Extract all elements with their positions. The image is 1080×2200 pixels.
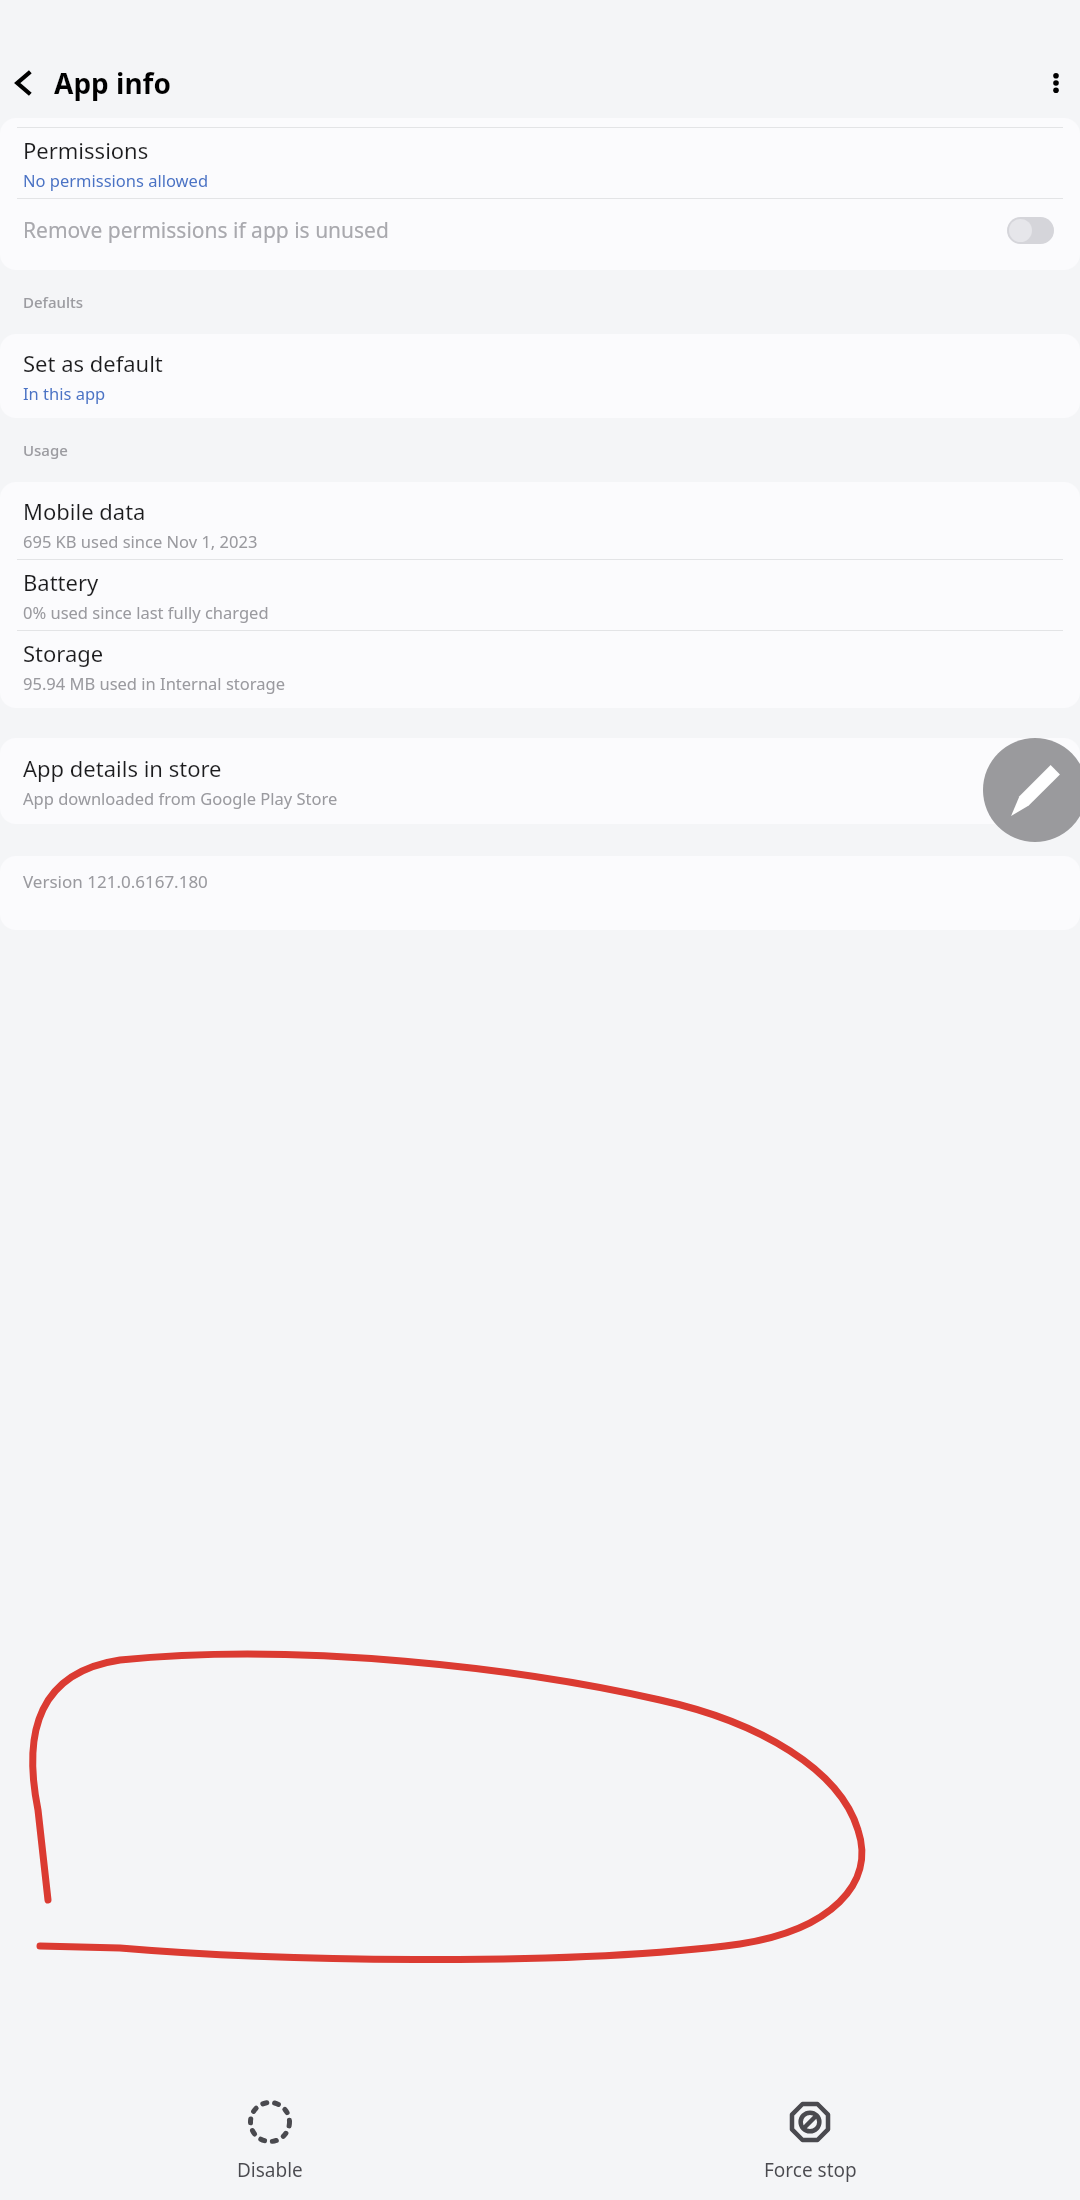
button[interactable]: Storage bbox=[0, 631, 1080, 701]
staticText: Remove permissions if app is unused bbox=[23, 216, 389, 245]
staticText: No permissions allowed bbox=[23, 169, 209, 191]
button[interactable]: More options bbox=[1032, 59, 1080, 107]
staticText: Force stop bbox=[764, 2157, 857, 2183]
staticText: Usage bbox=[23, 440, 68, 460]
button[interactable]: Disable bbox=[0, 2082, 540, 2200]
staticText: App details in store bbox=[23, 753, 222, 783]
staticText: Defaults bbox=[23, 292, 84, 312]
staticText: 0% used since last fully charged bbox=[23, 601, 269, 623]
staticText: App downloaded from Google Play Store bbox=[23, 787, 338, 809]
staticText: Disable bbox=[237, 2157, 303, 2183]
staticText: In this app bbox=[23, 382, 106, 404]
staticText: Set as default bbox=[23, 348, 163, 378]
staticText: Storage bbox=[23, 638, 104, 668]
staticText: App info bbox=[54, 64, 171, 102]
button[interactable]: Set as default bbox=[0, 341, 1080, 411]
button[interactable]: Mobile data bbox=[0, 489, 1080, 559]
staticText: Permissions bbox=[23, 135, 149, 165]
button[interactable]: Back bbox=[0, 60, 46, 106]
staticText: Version 121.0.6167.180 bbox=[23, 870, 208, 893]
button[interactable]: Battery bbox=[0, 560, 1080, 630]
button[interactable]: App details in store bbox=[0, 746, 1080, 816]
staticText: Battery bbox=[23, 567, 99, 597]
button[interactable]: Force stop bbox=[540, 2082, 1080, 2200]
staticText: 695 KB used since Nov 1, 2023 bbox=[23, 530, 258, 552]
staticText: 95.94 MB used in Internal storage bbox=[23, 672, 285, 694]
staticText: Mobile data bbox=[23, 496, 146, 526]
button[interactable]: Remove permissions if app is unused bbox=[0, 199, 1080, 261]
button[interactable]: Toggle remove permissions bbox=[1007, 217, 1054, 244]
button[interactable]: Permissions bbox=[0, 128, 1080, 198]
